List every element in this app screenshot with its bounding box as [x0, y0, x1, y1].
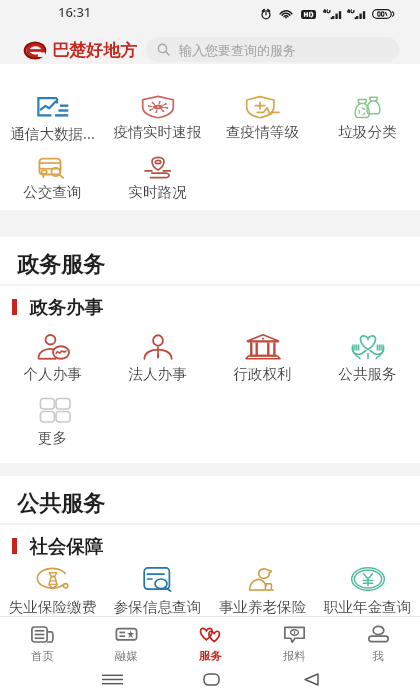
staticText: 政务办事	[29, 296, 103, 319]
staticText: 16:31	[58, 3, 92, 21]
staticText: 职业年金查询	[317, 598, 418, 616]
button[interactable]: 服务	[168, 617, 252, 665]
button[interactable]: 我	[336, 617, 420, 665]
button[interactable]: 职业年金查询	[315, 567, 420, 616]
button[interactable]: Back	[291, 666, 331, 692]
staticText: 通信大数据...	[2, 123, 103, 143]
button[interactable]: 查疫情等级	[210, 96, 315, 141]
button[interactable]: 公共服务	[315, 334, 420, 383]
staticText: 实时路况	[107, 183, 208, 201]
button[interactable]: 更多	[0, 398, 105, 447]
staticText: 融媒	[115, 649, 138, 663]
button[interactable]: Recent apps	[92, 666, 132, 692]
staticText: 查疫情等级	[212, 123, 313, 141]
staticText: 公交查询	[2, 183, 103, 201]
button[interactable]: 公交查询	[0, 156, 105, 201]
button[interactable]: 垃圾分类	[315, 96, 420, 141]
staticText: 首页	[31, 649, 54, 663]
staticText: 法人办事	[107, 365, 208, 383]
staticText: 社会保障	[29, 535, 103, 558]
staticText: 垃圾分类	[317, 123, 418, 141]
staticText: 事业养老保险	[212, 598, 313, 616]
button[interactable]: 疫情实时速报	[105, 96, 210, 141]
button[interactable]: 事业养老保险	[210, 567, 315, 616]
staticText: 公共服务	[17, 490, 105, 518]
staticText: 更多	[2, 429, 103, 447]
staticText: 我	[372, 649, 384, 663]
button[interactable]: Home	[191, 666, 231, 692]
button[interactable]: 个人办事	[0, 334, 105, 383]
button[interactable]: 首页	[0, 617, 84, 665]
button[interactable]: 通信大数据...	[0, 96, 105, 143]
button[interactable]: 法人办事	[105, 334, 210, 383]
button[interactable]: 报料	[252, 617, 336, 665]
button[interactable]: 行政权利	[210, 334, 315, 383]
staticText: 公共服务	[317, 365, 418, 383]
button[interactable]: 实时路况	[105, 156, 210, 201]
button[interactable]: 参保信息查询	[105, 567, 210, 616]
button[interactable]: 融媒	[84, 617, 168, 665]
staticText: 报料	[283, 649, 306, 663]
staticText: 疫情实时速报	[107, 123, 208, 141]
staticText: 服务	[199, 649, 222, 663]
button[interactable]: 输入您要查询的服务	[146, 37, 399, 62]
staticText: 政务服务	[17, 251, 105, 279]
button[interactable]: 失业保险缴费	[0, 567, 105, 616]
staticText: 失业保险缴费	[2, 598, 103, 616]
staticText: 个人办事	[2, 365, 103, 383]
staticText: 行政权利	[212, 365, 313, 383]
staticText: 巴楚好地方	[52, 40, 137, 61]
staticText: 参保信息查询	[107, 598, 208, 616]
staticText: 输入您要查询的服务	[179, 42, 296, 58]
